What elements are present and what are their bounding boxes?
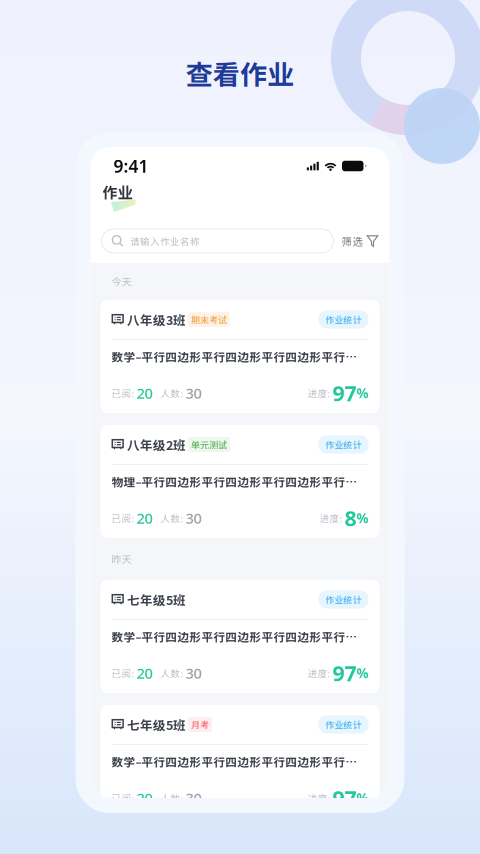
button[interactable]: 筛选 [341, 229, 378, 253]
staticText: % [356, 664, 368, 682]
staticText: 进度: [319, 511, 344, 525]
staticText: 8 [344, 504, 356, 532]
staticText: 七年级5班 [124, 590, 186, 609]
staticText: 查看作业 [186, 53, 294, 93]
staticText: 筛选 [341, 233, 363, 249]
staticText: 数学–平行四边形平行四边形平行四边形平行四边形平行四边形 [111, 753, 368, 770]
staticText: 物理–平行四边形平行四边形平行四边形平行四边形平行四边形 [111, 473, 368, 490]
staticText: 人数: [152, 791, 185, 805]
staticText: 月考 [191, 718, 209, 731]
staticText: 作业统计 [325, 313, 361, 326]
staticText: % [356, 384, 368, 402]
staticText: 八年级3班 [124, 310, 186, 329]
staticText: 今天 [111, 274, 131, 289]
button[interactable]: 七年级5班 [100, 580, 379, 693]
staticText: 进度: [307, 386, 332, 400]
staticText: 数学–平行四边形平行四边形平行四边形平行四边形平行四边形 [111, 628, 368, 645]
staticText: 作业 [102, 181, 132, 203]
staticText: 已阅: [111, 386, 136, 400]
staticText: 20 [136, 663, 152, 683]
staticText: 已阅: [111, 511, 136, 525]
staticText: 人数: [152, 511, 185, 525]
staticText: 单元测试 [191, 438, 227, 451]
staticText: 20 [136, 508, 152, 528]
button[interactable]: 作业统计 [318, 715, 368, 733]
staticText: 数学–平行四边形平行四边形平行四边形平行四边形平行四边形 [111, 348, 368, 365]
staticText: 97 [332, 659, 356, 687]
staticText: 30 [185, 663, 201, 683]
staticText: 已阅: [111, 791, 136, 805]
staticText: 已阅: [111, 666, 136, 680]
staticText: 作业统计 [325, 593, 361, 606]
staticText: 30 [185, 508, 201, 528]
staticText: 97 [332, 784, 356, 812]
staticText: 97 [332, 379, 356, 407]
staticText: % [356, 509, 368, 527]
button[interactable]: 八年级2班 [100, 425, 379, 538]
staticText: 七年级5班 [124, 715, 186, 734]
staticText: 昨天 [111, 552, 131, 566]
staticText: 作业统计 [325, 438, 361, 451]
staticText: % [356, 789, 368, 807]
staticText: 30 [185, 383, 201, 403]
button[interactable]: 作业统计 [318, 435, 368, 453]
button[interactable]: 请输入作业名称 [101, 229, 333, 253]
staticText: 20 [136, 788, 152, 808]
staticText: 30 [185, 788, 201, 808]
staticText: 八年级2班 [124, 435, 186, 454]
staticText: 人数: [152, 386, 185, 400]
button[interactable]: 八年级3班 [100, 300, 379, 413]
staticText: 进度: [307, 791, 332, 805]
staticText: 20 [136, 383, 152, 403]
button[interactable]: 七年级5班 [100, 705, 379, 818]
staticText: 期末考试 [191, 313, 227, 326]
staticText: 人数: [152, 666, 185, 680]
staticText: 作业统计 [325, 718, 361, 731]
button[interactable]: 作业统计 [318, 310, 368, 328]
button[interactable]: 作业统计 [318, 590, 368, 608]
staticText: 请输入作业名称 [130, 234, 200, 248]
staticText: 进度: [307, 666, 332, 680]
staticText: 9:41 [113, 154, 148, 177]
